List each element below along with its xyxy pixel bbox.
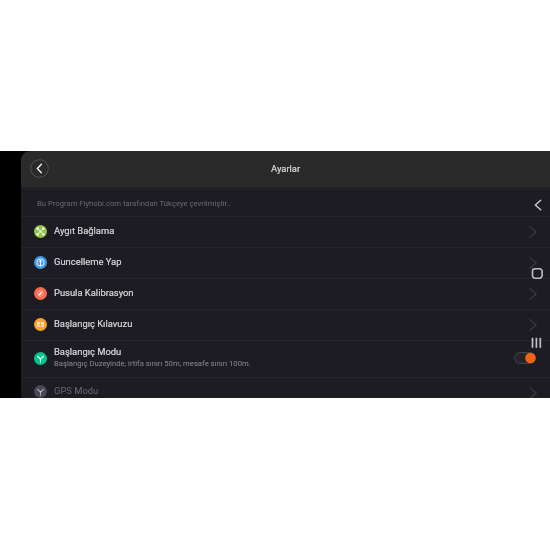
button[interactable]: Başlangıç Modu xyxy=(21,340,550,377)
button[interactable]: Back xyxy=(30,159,49,178)
staticText: Ayarlar xyxy=(271,163,301,174)
staticText: Guncelleme Yap xyxy=(54,256,122,267)
button[interactable]: Guncelleme Yap xyxy=(21,247,550,278)
button[interactable]: GPS Modu xyxy=(21,377,550,398)
button[interactable]: Başlangıç Kılavuzu xyxy=(21,309,550,340)
staticText: Pusula Kalibrasyon xyxy=(54,287,134,298)
button[interactable]: Toggle Başlangıç Modu xyxy=(514,352,536,364)
staticText: Başlangıç Modu xyxy=(54,346,122,357)
staticText: Bu Program Flyhobi.com tarafından Tükçey… xyxy=(37,199,231,208)
staticText: GPS Modu xyxy=(54,385,99,396)
button[interactable]: Aygıt Bağlama xyxy=(21,216,550,247)
staticText: Aygıt Bağlama xyxy=(54,225,115,236)
staticText: Başlangıç Duzeyinde, irtifa sınırı 50m, … xyxy=(54,359,251,368)
button[interactable]: Pusula Kalibrasyon xyxy=(21,278,550,309)
button[interactable]: Home xyxy=(531,267,544,280)
button[interactable]: Recent apps xyxy=(530,336,543,349)
button[interactable]: Back xyxy=(531,198,545,212)
staticText: Başlangıç Kılavuzu xyxy=(54,318,133,329)
